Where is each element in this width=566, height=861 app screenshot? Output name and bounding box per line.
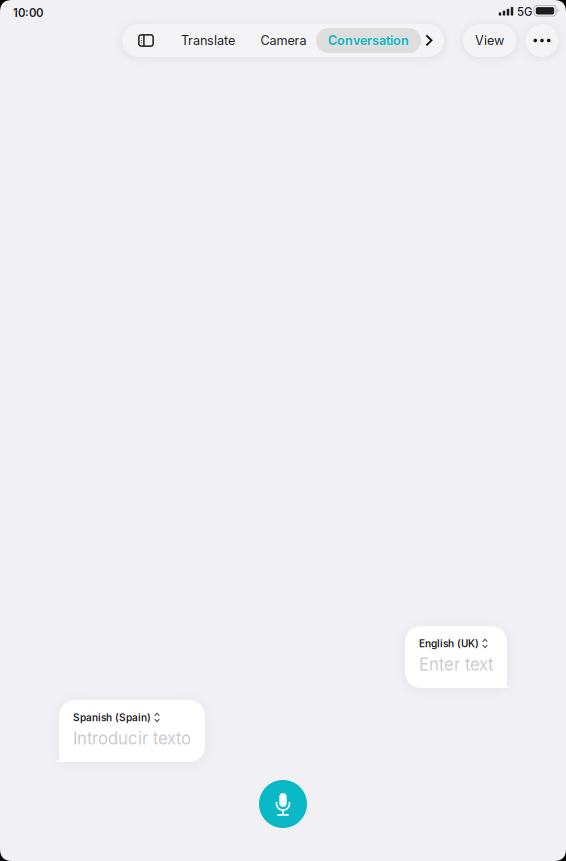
button[interactable]: Translate	[181, 24, 235, 57]
button[interactable]: More options	[525, 24, 559, 57]
button[interactable]: Camera	[260, 24, 307, 57]
staticText: 5G	[517, 5, 532, 19]
staticText: Enter text	[419, 654, 493, 675]
button[interactable]: View	[463, 24, 516, 57]
button[interactable]: Record	[259, 780, 307, 828]
staticText: Introducir texto	[73, 728, 191, 749]
button[interactable]: Show sidebar	[126, 24, 166, 57]
staticText: 10:00	[13, 6, 43, 20]
staticText: Conversation	[328, 33, 409, 48]
staticText: Spanish (Spain)	[73, 711, 151, 724]
staticText: Camera	[260, 33, 306, 48]
button[interactable]: Conversation	[316, 28, 421, 53]
staticText: English (UK)	[419, 637, 479, 650]
staticText: View	[475, 33, 504, 48]
staticText: Translate	[181, 33, 235, 48]
button[interactable]: More modes	[418, 24, 440, 57]
